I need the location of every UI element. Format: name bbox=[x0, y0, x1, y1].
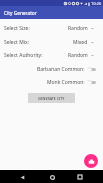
staticText: Select Authority: bbox=[4, 52, 43, 59]
button[interactable]: Mixed bbox=[73, 39, 94, 46]
staticText: GENERATE CITY bbox=[38, 96, 65, 101]
button[interactable]: GENERATE CITY bbox=[28, 93, 75, 103]
button[interactable]: Monk Common: bbox=[4, 76, 96, 89]
staticText: 10:26 bbox=[91, 1, 102, 6]
staticText: Random bbox=[68, 25, 88, 32]
staticText: Select Mix: bbox=[4, 39, 29, 46]
button[interactable]: Random bbox=[68, 25, 94, 32]
staticText: City Generator bbox=[4, 10, 37, 17]
button[interactable]: Back bbox=[16, 171, 28, 183]
staticText: Random bbox=[68, 52, 88, 59]
button[interactable]: Barbarian Common: bbox=[4, 63, 96, 76]
staticText: Monk Common: bbox=[47, 79, 85, 86]
button[interactable]: Generate bbox=[84, 154, 98, 168]
staticText: Select Size: bbox=[4, 25, 30, 32]
staticText: Barbarian Common: bbox=[37, 66, 85, 73]
button[interactable]: Recent apps bbox=[74, 171, 86, 183]
button[interactable]: Home bbox=[46, 171, 58, 183]
button[interactable]: Random bbox=[68, 52, 94, 59]
staticText: Mixed bbox=[73, 39, 88, 46]
